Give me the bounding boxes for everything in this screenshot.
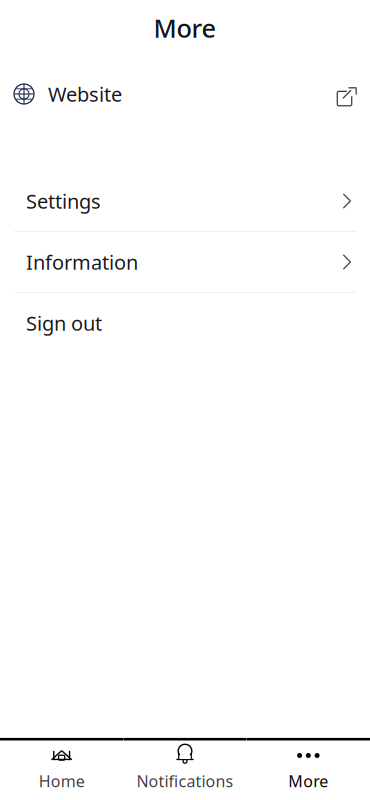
button[interactable]: More xyxy=(247,738,370,800)
staticText: Sign out xyxy=(26,310,102,336)
staticText: Information xyxy=(26,249,138,275)
button[interactable]: Sign out xyxy=(0,293,370,353)
button[interactable]: Website xyxy=(0,72,370,116)
button[interactable]: Information xyxy=(0,232,370,292)
staticText: Notifications xyxy=(136,770,233,792)
staticText: More xyxy=(153,11,216,45)
staticText: More xyxy=(288,770,328,792)
staticText: Website xyxy=(48,81,122,107)
staticText: Settings xyxy=(26,188,101,214)
button[interactable]: Notifications xyxy=(123,738,247,800)
staticText: Home xyxy=(39,770,85,792)
button[interactable]: Home xyxy=(0,738,123,800)
button[interactable]: Settings xyxy=(0,171,370,231)
